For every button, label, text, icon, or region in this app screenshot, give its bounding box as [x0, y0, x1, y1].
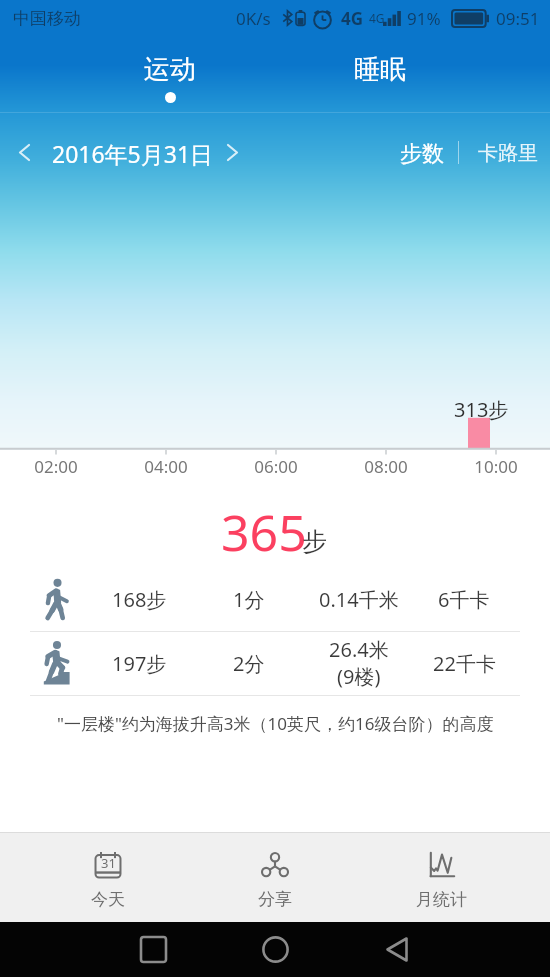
button[interactable]: Previous day: [6, 124, 42, 181]
staticText: 睡眠: [354, 53, 406, 86]
staticText: 今天: [91, 889, 125, 910]
staticText: 04:00: [144, 455, 188, 478]
button[interactable]: Recents: [118, 922, 188, 977]
staticText: 分享: [258, 889, 292, 910]
staticText: 09:51: [496, 7, 540, 30]
staticText: 22千卡: [433, 650, 496, 677]
staticText: 2016年5月31日: [52, 138, 214, 169]
staticText: 卡路里: [478, 141, 538, 166]
button[interactable]: Home: [240, 922, 310, 977]
staticText: 02:00: [34, 455, 78, 478]
staticText: 0.14千米: [319, 586, 399, 613]
button[interactable]: 2016年5月31日: [42, 124, 214, 181]
staticText: 步: [302, 526, 327, 557]
staticText: 1分: [233, 586, 265, 613]
staticText: 0K/s: [236, 7, 271, 30]
staticText: 31: [101, 854, 116, 872]
staticText: 26.4米: [329, 636, 389, 663]
staticText: 168步: [112, 586, 167, 613]
staticText: 月统计: [416, 889, 467, 910]
staticText: "一层楼"约为海拔升高3米（10英尺，约16级台阶）的高度: [57, 712, 494, 735]
staticText: 365: [221, 498, 307, 566]
staticText: 运动: [144, 53, 196, 86]
button[interactable]: 31: [25, 833, 191, 922]
staticText: (9楼): [337, 663, 381, 690]
staticText: 10:00: [474, 455, 518, 478]
staticText: 4G: [369, 10, 385, 26]
button[interactable]: 卡路里: [462, 124, 538, 181]
button[interactable]: 步数: [388, 124, 444, 181]
button[interactable]: Next day: [214, 124, 250, 181]
staticText: 313步: [454, 396, 509, 423]
staticText: 08:00: [364, 455, 408, 478]
button[interactable]: 睡眠: [330, 53, 430, 92]
button[interactable]: Back: [362, 922, 432, 977]
button[interactable]: 分享: [191, 833, 358, 922]
button[interactable]: 197步: [0, 631, 550, 695]
staticText: 中国移动: [13, 8, 81, 29]
button[interactable]: 168步: [0, 567, 550, 631]
staticText: 6千卡: [438, 586, 490, 613]
button[interactable]: 月统计: [358, 833, 525, 922]
staticText: 197步: [112, 650, 167, 677]
button[interactable]: 运动: [120, 53, 220, 103]
staticText: 4G: [341, 7, 364, 30]
staticText: 步数: [400, 140, 444, 168]
staticText: 91%: [407, 7, 441, 30]
staticText: 2分: [233, 650, 265, 677]
staticText: 06:00: [254, 455, 298, 478]
